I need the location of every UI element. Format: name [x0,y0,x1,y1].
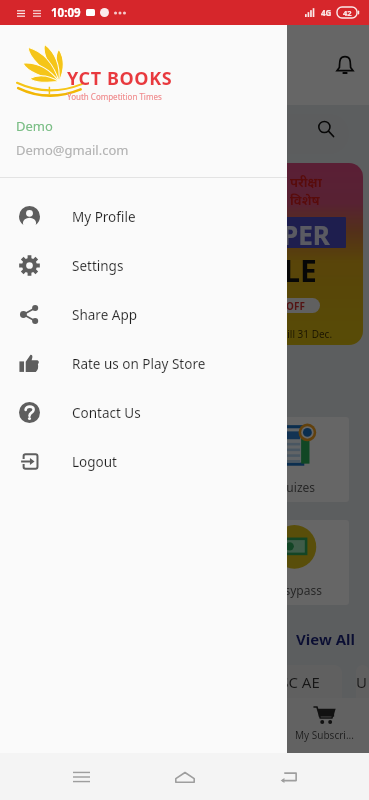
button[interactable]: SSC AE [250,665,342,698]
staticText: Quizes [277,479,316,495]
button[interactable]: UPSC [356,665,369,698]
staticText: Share App [72,306,137,324]
staticText: Youth Competition Times [67,91,162,102]
staticText: SSC AE [272,672,320,692]
button[interactable]: Study Material [127,417,232,502]
staticText: Logout [72,453,117,471]
staticText: SUPER [248,217,330,248]
button[interactable]: My Subscri... [283,703,365,742]
staticText: परीक्षा [290,173,322,191]
button[interactable] [14,114,349,154]
staticText: विशेष [290,191,320,209]
staticText: 42 [343,8,352,18]
button[interactable]: Share App [0,290,287,339]
button[interactable]: Home [163,755,207,799]
staticText: UPSC [356,672,369,692]
staticText: Easypass [271,582,322,598]
staticText: View All [296,629,355,649]
staticText: SALE [246,250,317,291]
button[interactable]: Quizes [244,417,349,502]
button[interactable]: Notifications [327,47,363,83]
button[interactable]: Contact Us [0,388,287,437]
staticText: My Profile [72,208,136,226]
button[interactable]: Test Series [10,417,115,502]
button[interactable]: Recents [59,755,103,799]
staticText: Offer valid till 31 Dec. 2021 [232,327,353,341]
button[interactable]: My Profile [0,192,287,241]
staticText: Demo@gmail.com [16,141,129,159]
button[interactable]: Logout [0,437,287,486]
staticText: My Subscri... [295,728,354,742]
button[interactable]: Back [266,755,310,799]
button[interactable]: Settings [0,241,287,290]
button[interactable]: Easypass [244,520,349,605]
staticText: 10:09 [51,5,81,21]
staticText: YCT BOOKS [67,66,173,91]
staticText: Rate us on Play Store [72,355,206,373]
button[interactable]: View All [288,625,363,653]
staticText: 50% OFF [263,299,305,313]
staticText: Demo [16,117,53,135]
button[interactable]: Rate us on Play Store [0,339,287,388]
staticText: Contact Us [72,404,141,422]
staticText: Settings [72,257,124,275]
staticText: 4G [321,7,332,18]
